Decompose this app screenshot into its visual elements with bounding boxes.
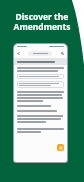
button[interactable] [17, 58, 64, 65]
staticText: Discover the Amendments [5, 11, 79, 32]
button[interactable]: Settings [57, 144, 64, 151]
button[interactable]: Search [60, 51, 65, 56]
button[interactable]: Back [16, 51, 21, 56]
button[interactable] [28, 51, 52, 56]
button[interactable] [17, 74, 64, 79]
button[interactable] [17, 81, 64, 88]
